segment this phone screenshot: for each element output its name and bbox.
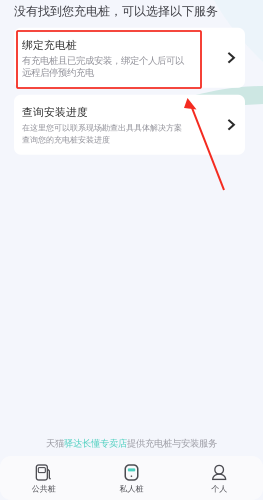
button[interactable]: 绑定充电桩 [14,28,245,88]
staticText: 远程启停预约充电 [22,67,94,78]
staticText: 天猫 [46,437,64,449]
staticText: 驿达长懂专卖店 [64,437,127,449]
staticText: 公共桩 [32,484,56,494]
staticText: 查询您的充电桩安装进度 [22,135,110,145]
staticText: 私人桩 [119,484,143,494]
staticText: 查询安装进度 [22,106,88,119]
staticText: 个人 [211,484,227,494]
staticText: 没有找到您充电桩，可以选择以下服务 [14,4,218,19]
button[interactable]: 查询安装进度 [14,95,245,155]
staticText: 提供充电桩与安装服务 [127,437,217,449]
staticText: 有充电桩且已完成安装，绑定个人后可以 [22,55,184,66]
button[interactable]: 公共桩 [0,456,88,500]
staticText: 在这里您可以联系现场勘查出具具体解决方案 [22,123,182,133]
button[interactable]: 私人桩 [88,456,175,500]
staticText: 绑定充电桩 [22,39,77,52]
button[interactable]: 个人 [175,456,263,500]
